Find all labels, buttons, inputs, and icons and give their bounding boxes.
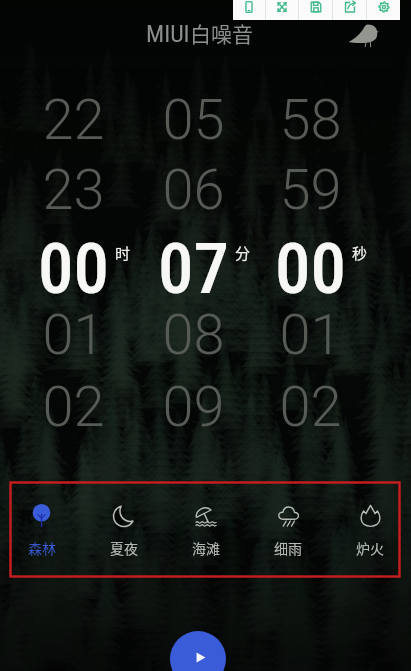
button[interactable]: 06 xyxy=(138,154,248,226)
staticText: 02 xyxy=(42,374,105,440)
button[interactable]: 01 xyxy=(18,299,128,371)
button[interactable]: 59 xyxy=(255,154,365,226)
button[interactable]: 00 xyxy=(255,227,365,299)
button[interactable]: 细雨 xyxy=(247,482,329,577)
button[interactable]: 05 xyxy=(138,84,248,156)
staticText: 01 xyxy=(279,302,342,368)
staticText: 细雨 xyxy=(274,538,302,558)
staticText: 炉火 xyxy=(356,538,384,558)
button[interactable]: 07 xyxy=(138,227,248,299)
staticText: 07 xyxy=(158,227,229,299)
button[interactable]: Play xyxy=(170,631,226,671)
staticText: 分 xyxy=(235,242,251,264)
button[interactable]: 海滩 xyxy=(165,482,247,577)
staticText: 22 xyxy=(42,87,105,153)
button[interactable]: 森林 xyxy=(0,482,83,577)
button[interactable]: 23 xyxy=(18,154,128,226)
staticText: 时 xyxy=(115,242,131,264)
button[interactable]: 00 xyxy=(18,227,128,299)
staticText: 夏夜 xyxy=(110,538,138,558)
button[interactable]: Share xyxy=(333,0,366,20)
staticText: 白噪音 xyxy=(190,18,253,48)
staticText: 59 xyxy=(279,157,342,223)
button[interactable]: 22 xyxy=(18,84,128,156)
staticText: 08 xyxy=(162,302,225,368)
staticText: 秒 xyxy=(352,242,368,264)
staticText: 23 xyxy=(42,157,105,223)
staticText: 09 xyxy=(162,374,225,440)
staticText: 02 xyxy=(279,374,342,440)
button[interactable]: 01 xyxy=(255,299,365,371)
button[interactable]: Fullscreen xyxy=(266,0,298,20)
staticText: 05 xyxy=(162,87,225,153)
button[interactable]: Device frame xyxy=(233,0,265,20)
button[interactable]: Save screenshot xyxy=(299,0,332,20)
staticText: 森林 xyxy=(28,538,56,558)
button[interactable]: 夏夜 xyxy=(83,482,165,577)
button[interactable]: 09 xyxy=(138,371,248,443)
button[interactable]: 02 xyxy=(255,371,365,443)
button[interactable]: Settings xyxy=(367,0,400,20)
staticText: 01 xyxy=(42,302,105,368)
button[interactable]: 炉火 xyxy=(329,482,411,577)
button[interactable]: 58 xyxy=(255,84,365,156)
staticText: 00 xyxy=(275,227,346,299)
staticText: 海滩 xyxy=(192,538,220,558)
staticText: 58 xyxy=(279,87,342,153)
staticText: MIUI xyxy=(146,20,190,48)
button[interactable]: 08 xyxy=(138,299,248,371)
button[interactable]: 02 xyxy=(18,371,128,443)
staticText: 06 xyxy=(162,157,225,223)
staticText: 00 xyxy=(38,227,109,299)
